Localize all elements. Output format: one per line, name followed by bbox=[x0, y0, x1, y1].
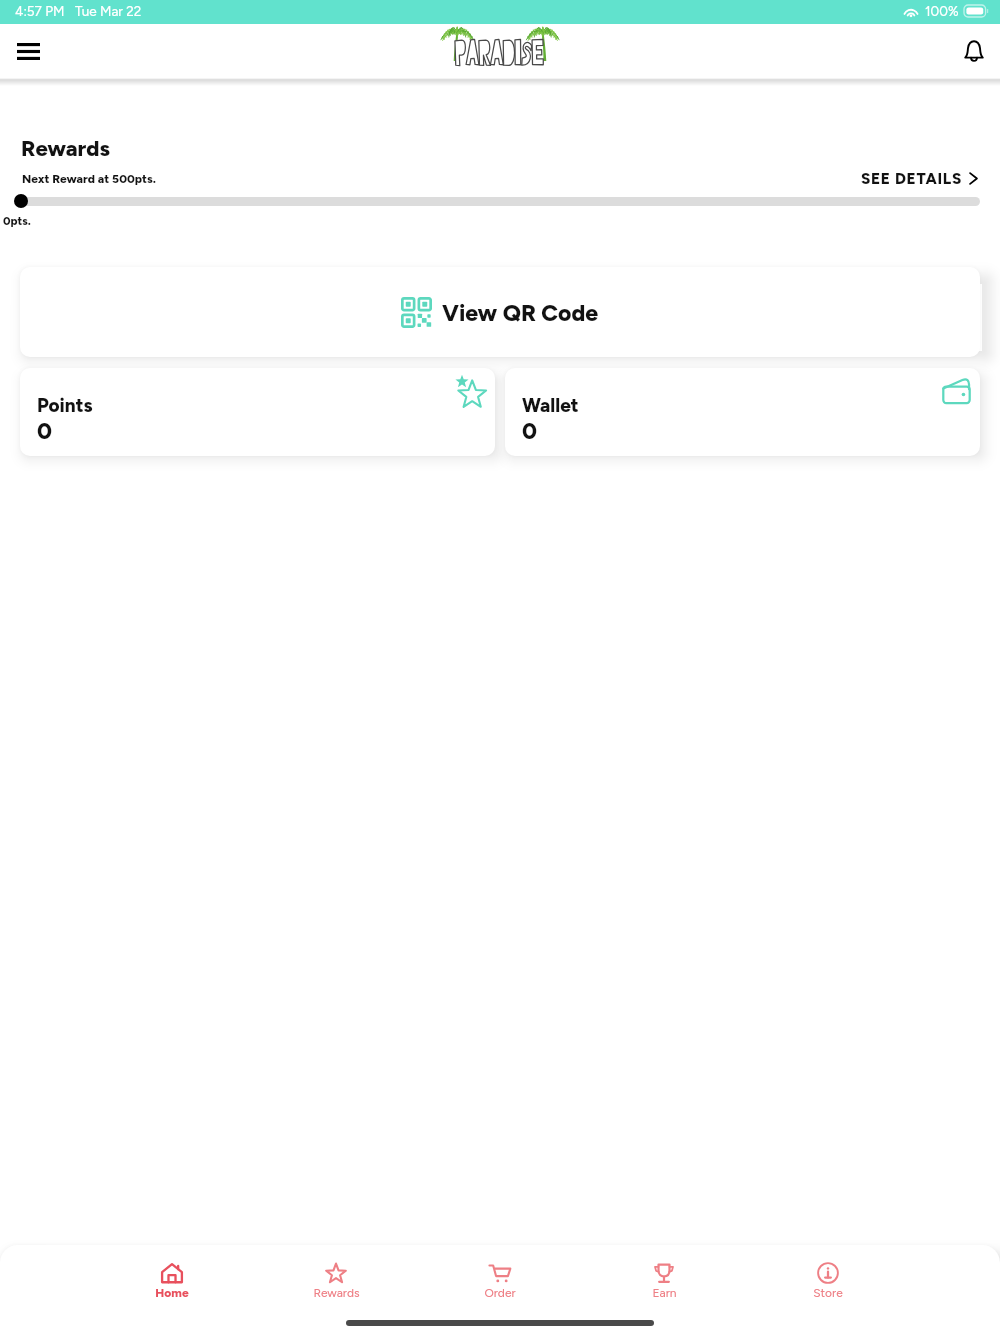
button[interactable]: SEE DETAILS bbox=[853, 169, 978, 188]
button[interactable]: Home bbox=[90, 1260, 254, 1302]
staticText: Wallet bbox=[522, 394, 579, 417]
staticText: 0pts. bbox=[3, 214, 31, 228]
staticText: Home bbox=[155, 1286, 189, 1300]
staticText: View QR Code bbox=[442, 299, 599, 327]
staticText: Tue Mar 22 bbox=[75, 3, 142, 19]
staticText: 4:57 PM bbox=[15, 3, 65, 19]
staticText: Rewards bbox=[313, 1286, 360, 1300]
staticText: Earn bbox=[652, 1286, 677, 1300]
button[interactable]: Notifications bbox=[951, 28, 997, 74]
staticText: SEE DETAILS bbox=[861, 169, 962, 188]
button[interactable]: Rewards bbox=[254, 1260, 418, 1302]
button[interactable]: Earn bbox=[582, 1260, 746, 1302]
staticText: Points bbox=[37, 394, 93, 417]
staticText: Rewards bbox=[21, 135, 111, 161]
staticText: 100% bbox=[925, 3, 959, 19]
staticText: Store bbox=[813, 1286, 843, 1300]
staticText: 0 bbox=[37, 417, 52, 445]
staticText: 0 bbox=[522, 417, 537, 445]
button[interactable]: View QR Code bbox=[20, 267, 980, 357]
button[interactable]: Menu bbox=[5, 28, 51, 74]
button[interactable]: Order bbox=[418, 1260, 582, 1302]
button[interactable]: Wallet bbox=[505, 368, 980, 456]
button[interactable]: Points bbox=[20, 368, 495, 456]
button[interactable]: Store bbox=[746, 1260, 910, 1302]
staticText: Next Reward at 500pts. bbox=[22, 172, 156, 186]
staticText: Order bbox=[484, 1286, 516, 1300]
